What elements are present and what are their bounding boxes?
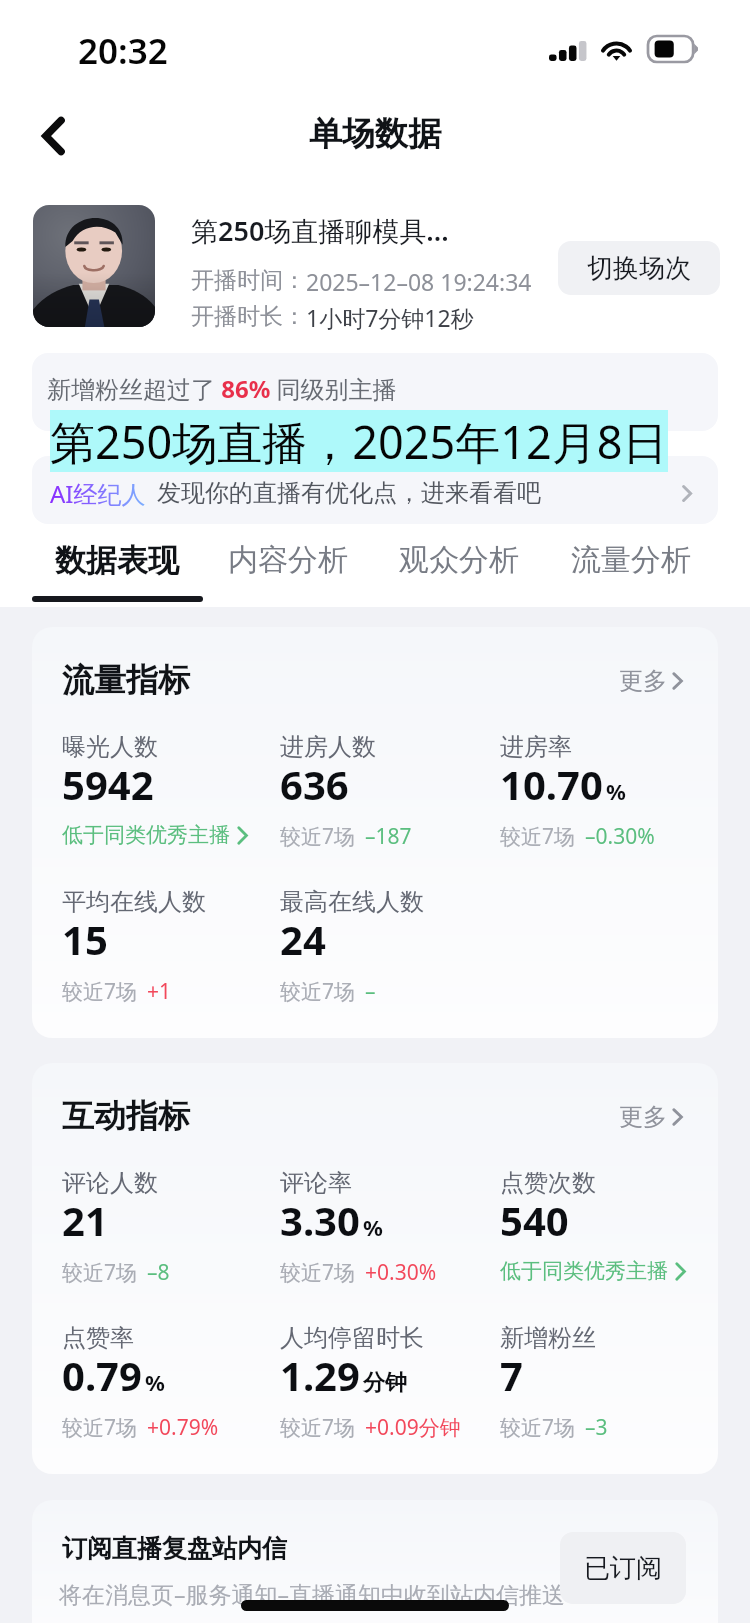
staticText: 较近7场 bbox=[62, 977, 138, 1006]
button[interactable]: 低于同类优秀主播 bbox=[500, 1258, 686, 1284]
button[interactable]: 内容分析 bbox=[200, 524, 376, 604]
staticText: 数据表现 bbox=[55, 541, 179, 580]
staticText: –0.30% bbox=[585, 822, 655, 851]
staticText: 评论人数 bbox=[62, 1168, 158, 1198]
button[interactable]: 观众分析 bbox=[371, 524, 547, 604]
staticText: 进房率 bbox=[500, 732, 572, 762]
staticText: 更多 bbox=[619, 1102, 667, 1132]
staticText: 流量指标 bbox=[62, 660, 190, 700]
staticText: 互动指标 bbox=[62, 1096, 190, 1136]
staticText: 低于同类优秀主播 bbox=[62, 822, 230, 848]
staticText: 较近7场 bbox=[500, 822, 576, 851]
staticText: 636 bbox=[280, 757, 349, 811]
staticText: 10.70 bbox=[500, 757, 603, 811]
staticText: 540 bbox=[500, 1193, 569, 1247]
staticText: 更多 bbox=[619, 666, 667, 696]
staticText: +1 bbox=[147, 977, 172, 1006]
button[interactable]: 流量分析 bbox=[543, 524, 719, 604]
staticText: % bbox=[363, 1212, 383, 1242]
staticText: 开播时长： bbox=[191, 302, 306, 331]
staticText: 较近7场 bbox=[280, 977, 356, 1006]
button[interactable]: 低于同类优秀主播 bbox=[62, 822, 248, 848]
staticText: 较近7场 bbox=[62, 1413, 138, 1442]
button[interactable]: 切换场次 bbox=[558, 241, 720, 295]
staticText: 发现你的直播有优化点，进来看看吧 bbox=[157, 478, 541, 508]
staticText: 7 bbox=[500, 1348, 523, 1402]
button[interactable]: 新增粉丝超过了 86% 同级别主播 bbox=[32, 353, 718, 431]
staticText: 3.30 bbox=[280, 1193, 360, 1247]
staticText: 1.29 bbox=[280, 1348, 360, 1402]
staticText: 平均在线人数 bbox=[62, 887, 206, 917]
staticText: 新增粉丝 bbox=[500, 1323, 596, 1353]
button[interactable]: AI经纪人 bbox=[32, 456, 718, 524]
staticText: 订阅直播复盘站内信 bbox=[62, 1533, 287, 1564]
staticText: 15 bbox=[62, 912, 108, 966]
staticText: % bbox=[606, 776, 626, 806]
button[interactable]: Back bbox=[22, 105, 84, 167]
staticText: 较近7场 bbox=[280, 1258, 356, 1287]
button[interactable]: 已订阅 bbox=[560, 1532, 686, 1604]
staticText: 开播时间： bbox=[191, 266, 306, 295]
staticText: +0.09分钟 bbox=[365, 1413, 461, 1442]
staticText: 人均停留时长 bbox=[280, 1323, 424, 1353]
staticText: 2025–12–08 19:24:34 bbox=[306, 266, 532, 297]
staticText: 1小时7分钟12秒 bbox=[306, 302, 474, 333]
staticText: –187 bbox=[365, 822, 412, 851]
staticText: 较近7场 bbox=[280, 822, 356, 851]
staticText: 第250场直播聊模具... bbox=[191, 212, 449, 249]
staticText: 进房人数 bbox=[280, 732, 376, 762]
staticText: 评论率 bbox=[280, 1168, 352, 1198]
staticText: % bbox=[145, 1367, 165, 1397]
staticText: AI经纪人 bbox=[50, 477, 146, 510]
staticText: 点赞次数 bbox=[500, 1168, 596, 1198]
staticText: +0.79% bbox=[147, 1413, 219, 1442]
staticText: –8 bbox=[147, 1258, 170, 1287]
staticText: 第250场直播，2025年12月8日 bbox=[50, 411, 668, 472]
button[interactable]: 更多 bbox=[619, 1102, 683, 1132]
staticText: 点赞率 bbox=[62, 1323, 134, 1353]
staticText: 较近7场 bbox=[62, 1258, 138, 1287]
staticText: 较近7场 bbox=[500, 1413, 576, 1442]
staticText: +0.30% bbox=[365, 1258, 437, 1287]
staticText: 21 bbox=[62, 1193, 108, 1247]
staticText: 较近7场 bbox=[280, 1413, 356, 1442]
staticText: 20:32 bbox=[78, 27, 168, 75]
staticText: 已订阅 bbox=[584, 1552, 662, 1585]
staticText: 观众分析 bbox=[399, 541, 519, 579]
staticText: 最高在线人数 bbox=[280, 887, 424, 917]
staticText: 曝光人数 bbox=[62, 732, 158, 762]
button[interactable]: 更多 bbox=[619, 666, 683, 696]
staticText: 单场数据 bbox=[309, 113, 441, 155]
staticText: 5942 bbox=[62, 757, 154, 811]
staticText: 流量分析 bbox=[571, 541, 691, 579]
staticText: 将在消息页–服务通知–直播通知中收到站内信推送 bbox=[59, 1578, 565, 1609]
staticText: –3 bbox=[585, 1413, 608, 1442]
staticText: 新增粉丝超过了 86% 同级别主播 bbox=[47, 372, 397, 405]
staticText: – bbox=[365, 977, 376, 1006]
staticText: 低于同类优秀主播 bbox=[500, 1258, 668, 1284]
staticText: 0.79 bbox=[62, 1348, 142, 1402]
staticText: 分钟 bbox=[363, 1369, 407, 1397]
staticText: 切换场次 bbox=[587, 252, 691, 285]
staticText: 24 bbox=[280, 912, 326, 966]
staticText: 内容分析 bbox=[228, 541, 348, 579]
button[interactable]: 数据表现 bbox=[29, 524, 205, 604]
